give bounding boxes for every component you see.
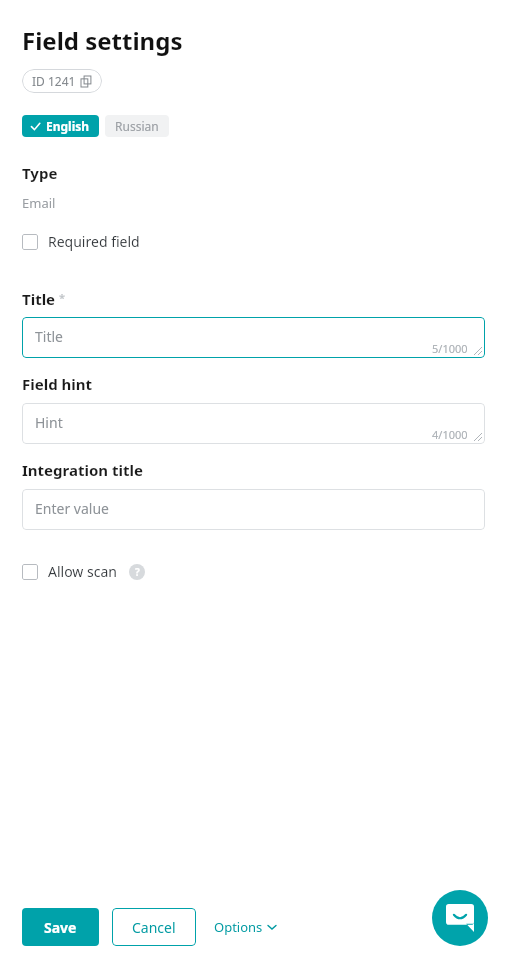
button[interactable]: Title	[22, 317, 485, 358]
staticText: Field settings	[22, 24, 183, 57]
staticText: Integration title	[22, 460, 143, 480]
staticText: Title	[35, 327, 63, 346]
staticText: Cancel	[132, 918, 176, 937]
button[interactable]: Cancel	[112, 908, 196, 946]
button[interactable]: Allow scan	[22, 560, 151, 583]
staticText: ID 1241	[32, 73, 76, 89]
staticText: Type	[22, 163, 58, 183]
staticText: Required field	[48, 232, 140, 251]
staticText: Field hint	[22, 374, 93, 394]
button[interactable]: Enter value	[22, 489, 485, 530]
staticText: Email	[22, 194, 56, 212]
staticText: 4/1000	[432, 427, 468, 442]
button[interactable]: Open chat	[432, 890, 488, 946]
button[interactable]: ID 1241	[22, 69, 102, 93]
button[interactable]: Russian	[105, 115, 169, 137]
staticText: 5/1000	[432, 341, 468, 356]
button[interactable]: Hint	[22, 403, 485, 444]
staticText: English	[46, 118, 90, 134]
staticText: *	[59, 290, 66, 305]
staticText: Allow scan	[48, 562, 117, 581]
staticText: Save	[44, 918, 77, 937]
button[interactable]: English	[22, 115, 99, 137]
button[interactable]: Options	[210, 908, 280, 946]
staticText: Options	[214, 918, 263, 936]
staticText: ?	[135, 565, 140, 579]
staticText: Russian	[115, 118, 159, 134]
staticText: Title	[22, 289, 56, 309]
staticText: Hint	[35, 413, 63, 432]
staticText: Enter value	[35, 499, 109, 518]
button[interactable]: Save	[22, 908, 99, 946]
button[interactable]: Required field	[22, 230, 146, 253]
